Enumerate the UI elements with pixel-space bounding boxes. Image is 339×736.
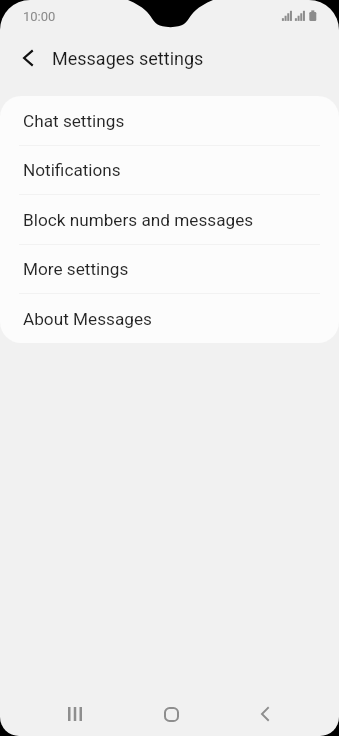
- staticText: 10:00: [23, 9, 56, 24]
- button[interactable]: Chat settings: [0, 96, 339, 145]
- staticText: Messages settings: [52, 48, 204, 69]
- button[interactable]: Back: [241, 690, 289, 736]
- button[interactable]: About Messages: [0, 294, 339, 343]
- staticText: About Messages: [23, 309, 152, 329]
- button[interactable]: Notifications: [0, 145, 339, 194]
- button[interactable]: Recent apps: [51, 690, 99, 736]
- staticText: Block numbers and messages: [23, 210, 254, 230]
- button[interactable]: More settings: [0, 244, 339, 293]
- button[interactable]: Navigate up: [10, 38, 46, 78]
- staticText: Chat settings: [23, 111, 125, 131]
- button[interactable]: Block numbers and messages: [0, 195, 339, 244]
- button[interactable]: Home: [147, 690, 195, 736]
- staticText: Notifications: [23, 160, 121, 180]
- staticText: More settings: [23, 259, 129, 279]
